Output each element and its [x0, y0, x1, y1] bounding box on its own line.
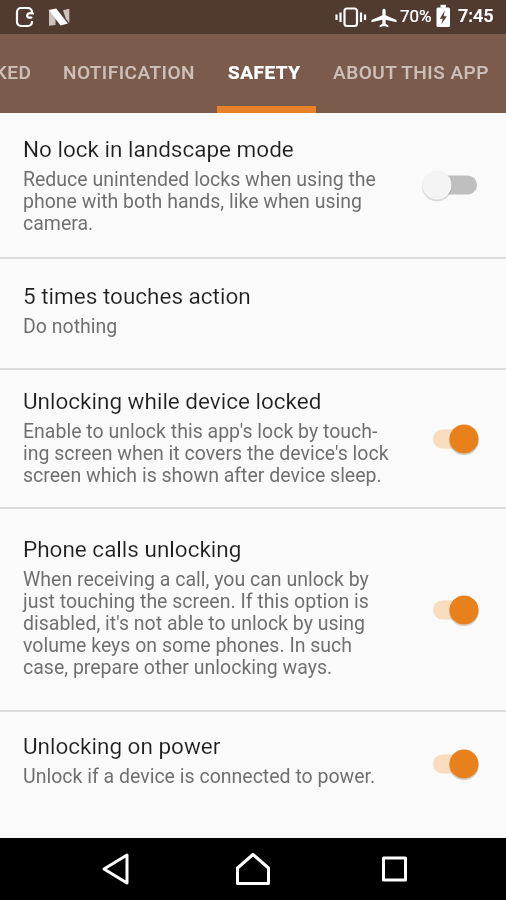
staticText: ABOUT THIS APP [333, 61, 489, 83]
staticText: Phone calls unlocking [23, 536, 242, 562]
staticText: Unlock if a device is connected to power… [23, 765, 376, 788]
staticText: Enable to unlock this app's lock by touc… [23, 420, 389, 487]
staticText: NOTIFICATION [63, 61, 195, 83]
staticText: SAFETY [228, 61, 301, 83]
staticText: 7:45 [458, 5, 494, 26]
staticText: No lock in landscape mode [23, 136, 294, 162]
staticText: When receiving a call, you can unlock by… [23, 568, 369, 679]
staticText: Reduce unintended locks when using the p… [23, 168, 376, 235]
staticText: Unlocking while device locked [23, 388, 322, 414]
staticText: Do nothing [23, 315, 118, 338]
staticText: 70% [400, 6, 432, 26]
staticText: Unlocking on power [23, 733, 221, 759]
staticText: 5 times touches action [23, 283, 251, 309]
staticText: LOCKED [0, 61, 32, 83]
